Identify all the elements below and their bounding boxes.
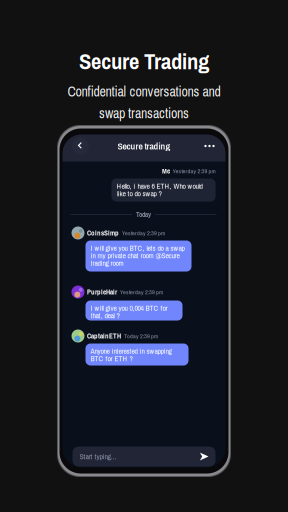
staticText: Start typing... (79, 451, 116, 462)
staticText: Yesterday 2:39 pm (172, 167, 215, 175)
staticText: CoinsSimp (87, 228, 119, 238)
staticText: swap transactions (99, 104, 189, 123)
button[interactable]: Back (70, 135, 91, 156)
staticText: like to do swap ? (116, 188, 161, 199)
staticText: Hello, i have 6 ETH, Who would (116, 181, 202, 191)
button[interactable]: More options (199, 135, 220, 156)
staticText: I will give you BTC, lets do a swap (90, 243, 184, 253)
staticText: trading room (90, 258, 123, 268)
staticText: Secure Trading (79, 46, 209, 76)
staticText: Yesterday 2:39 pm (122, 229, 165, 237)
staticText: Me (162, 166, 170, 176)
staticText: I will give you 0,004 BTC for (90, 303, 167, 313)
button[interactable]: Start typing... (72, 446, 215, 466)
staticText: Yesterday 2:39 pm (120, 288, 163, 296)
staticText: Anyone interested in swapping (90, 346, 171, 356)
staticText: Confidential conversations and (67, 82, 220, 101)
staticText: Secure trading (117, 139, 170, 152)
staticText: Today 2:39 pm (124, 332, 158, 340)
staticText: PurpleHair (87, 287, 117, 297)
staticText: in my private chat room @Secure (90, 250, 179, 261)
staticText: that, deal ? (90, 310, 119, 321)
staticText: CaptainETH (87, 331, 121, 341)
staticText: BTC for ETH ? (90, 353, 132, 364)
staticText: Today (136, 210, 151, 219)
